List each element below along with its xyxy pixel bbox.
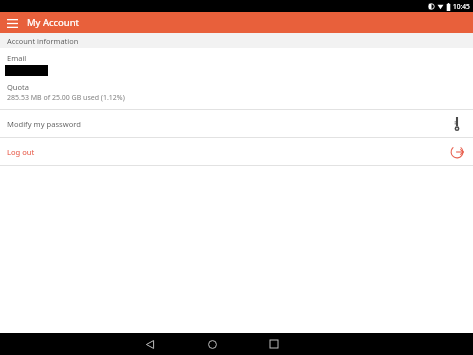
staticText: 10:45 [453, 2, 470, 11]
button[interactable]: Modify my password [0, 110, 473, 137]
button[interactable]: Back [139, 333, 161, 355]
staticText: Modify my password [7, 119, 81, 129]
other: Modify my password [448, 115, 466, 133]
other: Log out [448, 143, 466, 161]
staticText: 285.53 MB of 25.00 GB used (1.12%) [7, 93, 125, 103]
button[interactable]: Recent apps [263, 333, 285, 355]
staticText: Quota [7, 82, 29, 92]
button[interactable]: Home [201, 333, 223, 355]
button[interactable]: Log out [0, 138, 473, 165]
staticText: Log out [7, 147, 35, 157]
button[interactable]: Open navigation menu [4, 15, 20, 31]
staticText: My Account [27, 16, 80, 29]
staticText: Account information [7, 36, 79, 46]
staticText: Email [7, 53, 27, 63]
